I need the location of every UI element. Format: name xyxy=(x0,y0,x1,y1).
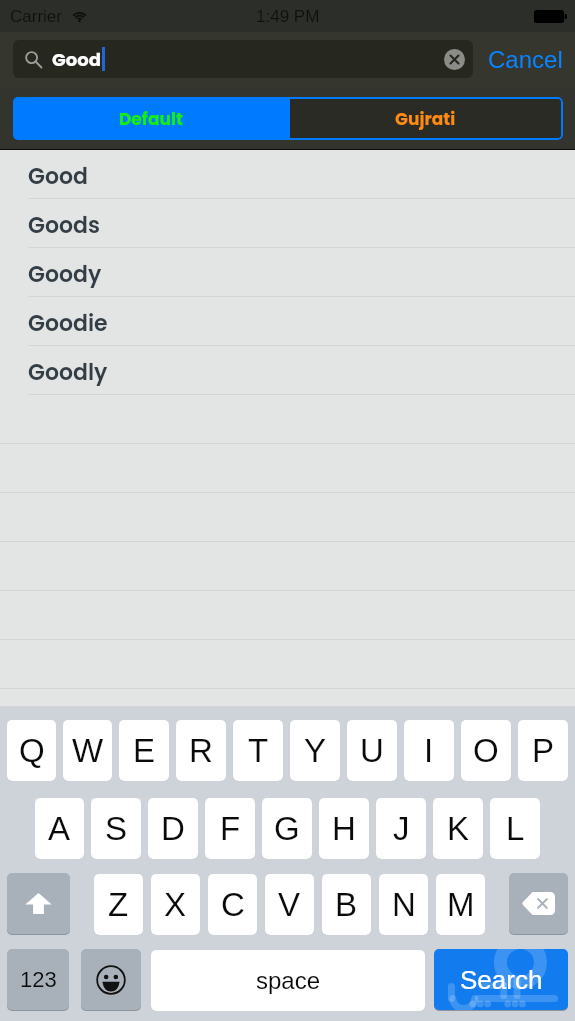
staticText: Y xyxy=(304,732,327,769)
button[interactable]: F xyxy=(205,797,255,859)
staticText: 1:49 PM xyxy=(256,7,320,26)
button[interactable]: J xyxy=(376,797,426,859)
staticText: Goody xyxy=(28,259,102,290)
button[interactable]: Y xyxy=(290,719,340,781)
staticText: Cancel xyxy=(488,46,563,73)
button[interactable]: Good xyxy=(0,150,575,199)
button[interactable]: E xyxy=(119,719,169,781)
staticText: Search xyxy=(460,965,543,994)
button[interactable]: Delete xyxy=(509,873,568,935)
staticText: A xyxy=(48,810,71,847)
button[interactable]: H xyxy=(319,797,369,859)
button[interactable]: Z xyxy=(94,873,143,935)
button[interactable]: N xyxy=(379,873,428,935)
button[interactable]: Default xyxy=(13,97,288,140)
button[interactable]: O xyxy=(461,719,511,781)
staticText: N xyxy=(392,886,416,923)
staticText: Goodly xyxy=(28,357,108,388)
button[interactable]: P xyxy=(518,719,568,781)
staticText: M xyxy=(447,886,475,923)
button[interactable]: Goodie xyxy=(0,297,575,346)
button[interactable]: Goods xyxy=(0,199,575,248)
button[interactable]: R xyxy=(176,719,226,781)
staticText: Good xyxy=(52,47,101,72)
staticText: B xyxy=(335,886,358,923)
staticText: T xyxy=(248,732,269,769)
staticText: C xyxy=(221,886,245,923)
staticText: 123 xyxy=(20,967,57,992)
staticText: Z xyxy=(108,886,129,923)
staticText: Q xyxy=(19,732,45,769)
button[interactable]: Gujrati xyxy=(288,97,563,140)
button[interactable]: Emoji xyxy=(81,949,141,1011)
button[interactable]: L xyxy=(490,797,540,859)
staticText: Carrier xyxy=(10,7,62,26)
button[interactable]: I xyxy=(404,719,454,781)
staticText: I xyxy=(424,732,434,769)
button[interactable]: Shift xyxy=(7,873,70,935)
button[interactable]: B xyxy=(322,873,371,935)
staticText: L xyxy=(506,810,525,847)
button[interactable]: Numbers xyxy=(7,949,69,1011)
staticText: X xyxy=(164,886,187,923)
button[interactable]: Good xyxy=(13,40,473,78)
button[interactable]: G xyxy=(262,797,312,859)
button[interactable]: D xyxy=(148,797,198,859)
button[interactable]: K xyxy=(433,797,483,859)
staticText: space xyxy=(256,967,321,994)
button[interactable]: C xyxy=(208,873,257,935)
staticText: E xyxy=(133,732,156,769)
button[interactable]: M xyxy=(436,873,485,935)
staticText: W xyxy=(72,732,104,769)
staticText: D xyxy=(161,810,185,847)
button[interactable]: Goodly xyxy=(0,346,575,395)
button[interactable]: Clear text xyxy=(444,49,465,70)
button[interactable]: T xyxy=(233,719,283,781)
staticText: K xyxy=(447,810,470,847)
button[interactable]: Cancel xyxy=(476,40,575,78)
button[interactable]: A xyxy=(35,797,84,859)
staticText: Goods xyxy=(28,210,100,241)
staticText: J xyxy=(393,810,410,847)
button[interactable]: S xyxy=(91,797,141,859)
staticText: S xyxy=(105,810,128,847)
button[interactable]: space xyxy=(151,949,425,1011)
staticText: G xyxy=(274,810,300,847)
staticText: P xyxy=(532,732,555,769)
staticText: Gujrati xyxy=(395,107,456,131)
staticText: H xyxy=(332,810,356,847)
staticText: F xyxy=(220,810,241,847)
button[interactable]: V xyxy=(265,873,314,935)
staticText: Default xyxy=(119,107,183,131)
staticText: Goodie xyxy=(28,308,108,339)
button[interactable]: U xyxy=(347,719,397,781)
button[interactable]: Search xyxy=(434,949,568,1011)
staticText: O xyxy=(473,732,499,769)
button[interactable]: Goody xyxy=(0,248,575,297)
button[interactable]: W xyxy=(63,719,112,781)
button[interactable]: Q xyxy=(7,719,56,781)
staticText: Good xyxy=(28,161,88,192)
staticText: U xyxy=(360,732,384,769)
button[interactable]: X xyxy=(151,873,200,935)
staticText: V xyxy=(278,886,301,923)
staticText: R xyxy=(189,732,213,769)
